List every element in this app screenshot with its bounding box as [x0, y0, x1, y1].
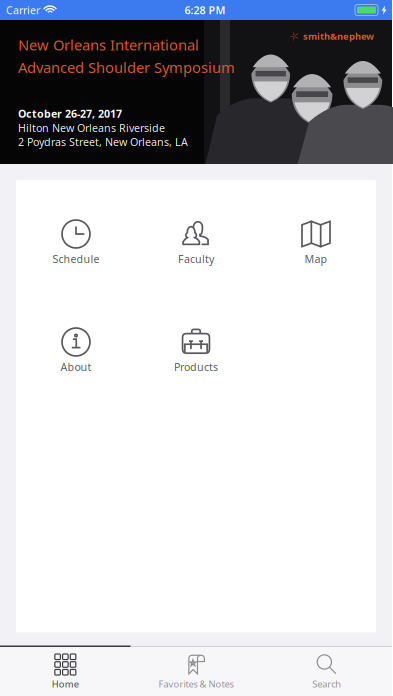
staticText: smith&nephew [303, 30, 374, 42]
staticText: Schedule [52, 252, 99, 266]
staticText: 2 Poydras Street, New Orleans, LA [18, 135, 188, 149]
staticText: About [60, 360, 91, 374]
staticText: Faculty [178, 252, 214, 266]
button[interactable]: Search [261, 647, 392, 696]
staticText: October 26-27, 2017 [18, 106, 122, 121]
button[interactable]: About [16, 320, 136, 382]
staticText: Search [312, 678, 341, 690]
staticText: Products [174, 360, 218, 374]
staticText: 6:28 PM [184, 3, 225, 17]
staticText: Map [304, 252, 327, 266]
button[interactable]: Schedule [16, 212, 136, 274]
staticText: New Orleans International [18, 35, 199, 54]
button[interactable]: Map [256, 212, 376, 274]
button[interactable]: Home [0, 647, 131, 696]
button[interactable]: Faculty [136, 212, 256, 274]
button[interactable]: Favorites & Notes [131, 647, 261, 696]
staticText: Home [52, 678, 79, 690]
button[interactable]: Products [136, 320, 256, 382]
staticText: Advanced Shoulder Symposium [18, 57, 235, 77]
staticText: Carrier [6, 3, 40, 17]
staticText: Favorites & Notes [158, 678, 233, 690]
staticText: Hilton New Orleans Riverside [18, 121, 165, 135]
